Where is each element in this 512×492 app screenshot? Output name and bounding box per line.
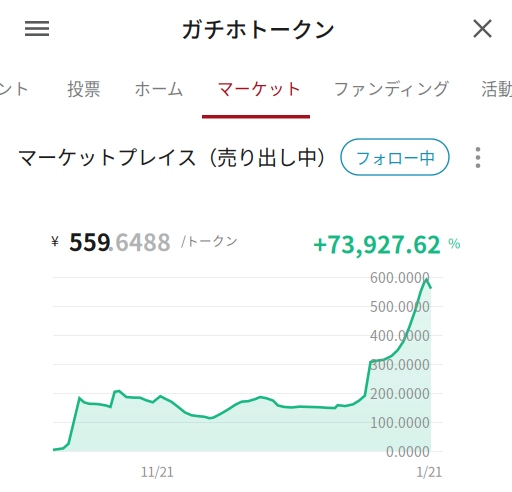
staticText: 300.0000: [370, 354, 430, 374]
staticText: マーケット: [217, 76, 302, 100]
staticText: .6488: [107, 224, 171, 258]
staticText: 活動: [481, 76, 512, 100]
staticText: マーケットプレイス（売り出し中）: [17, 142, 337, 171]
staticText: 400.0000: [370, 325, 430, 345]
button[interactable]: Menu: [13, 9, 61, 48]
staticText: /トークン: [181, 231, 238, 249]
button[interactable]: 活動: [481, 76, 512, 120]
button[interactable]: ント: [0, 76, 58, 120]
staticText: +73,927.62: [313, 226, 441, 260]
staticText: 1/21: [416, 461, 442, 481]
staticText: 100.0000: [370, 412, 430, 432]
button[interactable]: ホーム: [134, 76, 212, 120]
staticText: 200.0000: [370, 383, 430, 403]
staticText: 11/21: [140, 461, 173, 481]
staticText: 投票: [67, 76, 101, 100]
staticText: フォロー中: [355, 145, 435, 169]
staticText: 600.0000: [370, 267, 430, 287]
button[interactable]: フォロー中: [341, 139, 449, 175]
staticText: 500.0000: [370, 296, 430, 316]
button[interactable]: Close: [462, 8, 503, 49]
staticText: 0.0000: [386, 441, 430, 461]
staticText: ファンディング: [333, 76, 450, 100]
button[interactable]: マーケット: [217, 76, 325, 120]
button[interactable]: 投票: [67, 76, 129, 120]
staticText: ント: [0, 76, 30, 100]
staticText: ガチホトークン: [181, 12, 335, 44]
staticText: ホーム: [134, 76, 184, 100]
staticText: 559: [69, 224, 111, 258]
staticText: %: [448, 233, 460, 252]
staticText: ¥: [51, 230, 59, 250]
button[interactable]: ファンディング: [333, 76, 463, 120]
button[interactable]: More options: [462, 139, 494, 176]
